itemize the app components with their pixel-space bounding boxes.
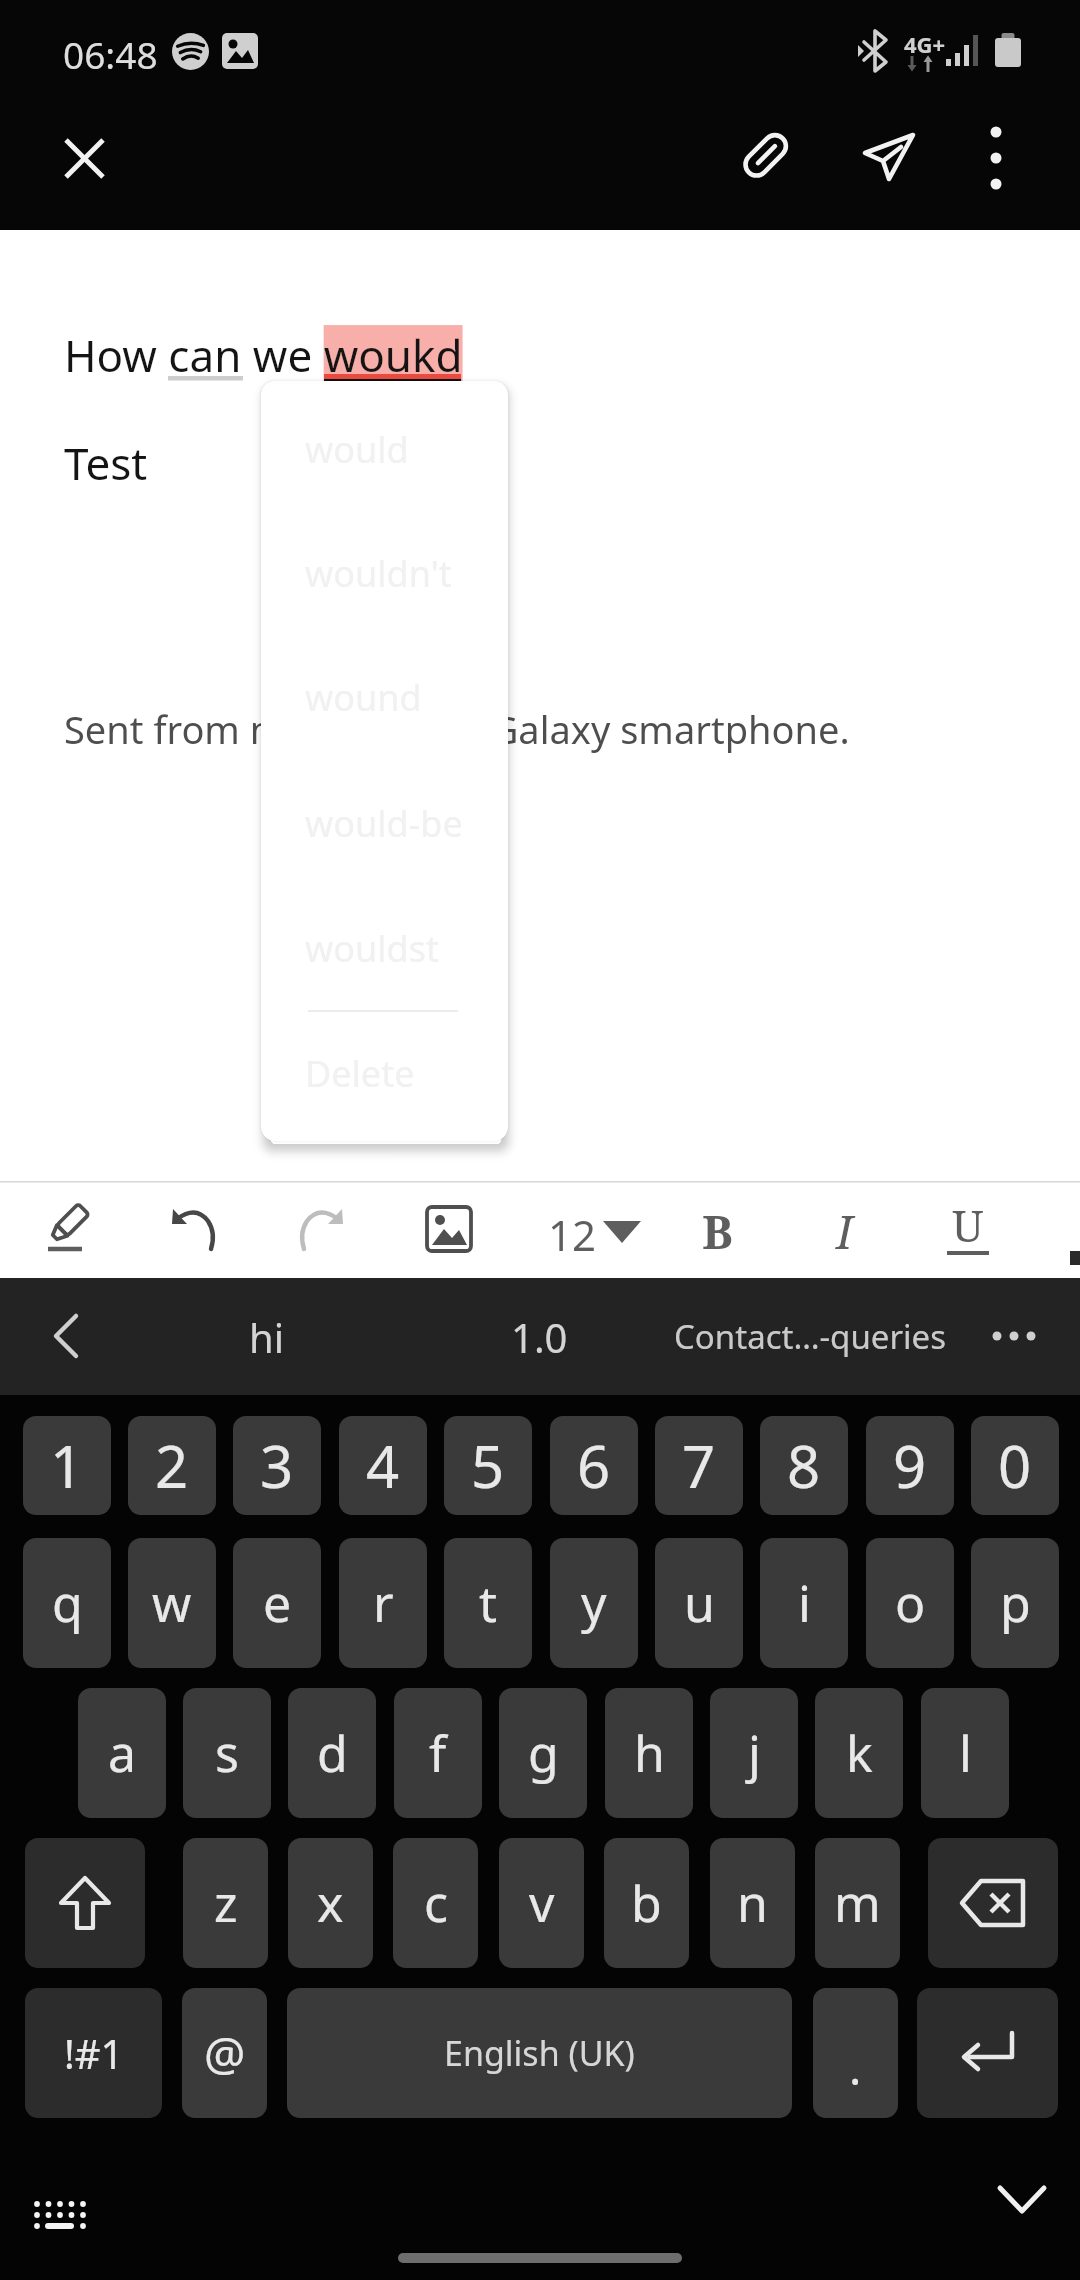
- button[interactable]: s: [183, 1688, 271, 1818]
- staticText: o: [895, 1569, 926, 1637]
- button[interactable]: d: [288, 1688, 376, 1818]
- button[interactable]: [35, 1193, 107, 1265]
- button[interactable]: e: [233, 1538, 321, 1668]
- staticText: 12: [548, 1206, 597, 1263]
- button[interactable]: 5: [444, 1416, 532, 1515]
- button[interactable]: [30, 1300, 102, 1372]
- button[interactable]: [413, 1193, 485, 1265]
- staticText: wouldst: [305, 924, 439, 973]
- staticText: .: [849, 2036, 862, 2099]
- button[interactable]: !#1: [25, 1988, 162, 2118]
- button[interactable]: a: [78, 1688, 166, 1818]
- button[interactable]: 3: [233, 1416, 321, 1515]
- staticText: Contact…-queries: [674, 1314, 946, 1359]
- button[interactable]: [16, 2183, 104, 2247]
- button[interactable]: .: [813, 1988, 898, 2118]
- staticText: f: [429, 1719, 447, 1787]
- button[interactable]: l: [921, 1688, 1009, 1818]
- button[interactable]: f: [394, 1688, 482, 1818]
- staticText: s: [215, 1719, 239, 1787]
- button[interactable]: k: [815, 1688, 903, 1818]
- button[interactable]: [928, 1838, 1058, 1968]
- staticText: k: [846, 1719, 873, 1787]
- staticText: 06:48: [63, 29, 158, 79]
- staticText: Sent from my Samsung Galaxy smartphone.: [64, 703, 850, 755]
- button[interactable]: [25, 1838, 145, 1968]
- staticText: x: [317, 1869, 344, 1937]
- staticText: r: [373, 1569, 394, 1637]
- button[interactable]: [978, 1300, 1050, 1372]
- button[interactable]: 1: [23, 1416, 111, 1515]
- staticText: 9: [893, 1426, 927, 1505]
- staticText: g: [528, 1719, 559, 1787]
- button[interactable]: 8: [760, 1416, 848, 1515]
- button[interactable]: [917, 1988, 1058, 2118]
- button[interactable]: 6: [550, 1416, 638, 1515]
- staticText: j: [748, 1719, 761, 1787]
- staticText: 5: [471, 1426, 505, 1505]
- staticText: hi: [249, 1310, 285, 1364]
- button[interactable]: o: [866, 1538, 954, 1668]
- button[interactable]: 7: [655, 1416, 743, 1515]
- button[interactable]: [986, 2170, 1058, 2230]
- staticText: B: [702, 1200, 733, 1263]
- staticText: would: [305, 425, 409, 474]
- staticText: English (UK): [444, 2030, 635, 2076]
- button[interactable]: [159, 1193, 231, 1265]
- button[interactable]: [530, 1183, 650, 1278]
- staticText: 0: [998, 1426, 1032, 1505]
- button[interactable]: q: [23, 1538, 111, 1668]
- button[interactable]: [284, 1193, 356, 1265]
- button[interactable]: [48, 122, 120, 194]
- staticText: 4: [366, 1426, 400, 1505]
- button[interactable]: b: [604, 1838, 689, 1968]
- staticText: wouldn't: [305, 549, 452, 598]
- button[interactable]: c: [393, 1838, 478, 1968]
- button[interactable]: @: [182, 1988, 267, 2118]
- button[interactable]: p: [971, 1538, 1059, 1668]
- staticText: 8: [787, 1426, 821, 1505]
- button[interactable]: n: [710, 1838, 795, 1968]
- staticText: n: [737, 1869, 768, 1937]
- staticText: y: [581, 1569, 607, 1637]
- staticText: i: [798, 1569, 811, 1637]
- button[interactable]: z: [183, 1838, 268, 1968]
- button[interactable]: [854, 120, 926, 192]
- button[interactable]: 0: [971, 1416, 1059, 1515]
- staticText: m: [834, 1869, 881, 1937]
- button[interactable]: 9: [866, 1416, 954, 1515]
- button[interactable]: w: [128, 1538, 216, 1668]
- button[interactable]: m: [815, 1838, 900, 1968]
- button[interactable]: y: [550, 1538, 638, 1668]
- button[interactable]: 2: [128, 1416, 216, 1515]
- staticText: U: [952, 1195, 984, 1255]
- button[interactable]: [729, 120, 801, 192]
- staticText: How can we woukd: [64, 325, 463, 385]
- button[interactable]: 4: [339, 1416, 427, 1515]
- staticText: Test: [64, 433, 148, 493]
- button[interactable]: h: [605, 1688, 693, 1818]
- staticText: !#1: [64, 2026, 124, 2080]
- staticText: 2: [155, 1426, 189, 1505]
- staticText: u: [684, 1569, 715, 1637]
- button[interactable]: v: [499, 1838, 584, 1968]
- button[interactable]: u: [655, 1538, 743, 1668]
- staticText: d: [317, 1719, 348, 1787]
- button[interactable]: x: [288, 1838, 373, 1968]
- staticText: w: [152, 1569, 192, 1637]
- staticText: q: [52, 1569, 83, 1637]
- staticText: would-be: [305, 799, 463, 848]
- button[interactable]: [960, 122, 1032, 194]
- button[interactable]: r: [339, 1538, 427, 1668]
- button[interactable]: t: [444, 1538, 532, 1668]
- staticText: p: [1000, 1569, 1031, 1637]
- button[interactable]: g: [499, 1688, 587, 1818]
- staticText: e: [263, 1569, 292, 1637]
- button[interactable]: i: [760, 1538, 848, 1668]
- button[interactable]: English (UK): [287, 1988, 792, 2118]
- staticText: 4G+: [904, 29, 946, 59]
- staticText: t: [479, 1569, 498, 1637]
- staticText: c: [424, 1869, 448, 1937]
- staticText: wound: [305, 673, 422, 722]
- button[interactable]: j: [710, 1688, 798, 1818]
